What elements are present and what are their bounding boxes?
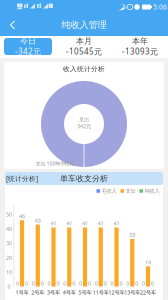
staticText: 0 bbox=[126, 280, 129, 287]
staticText: 支出 100% 342元 bbox=[35, 160, 74, 167]
staticText: 40 bbox=[6, 225, 12, 232]
staticText: 0 bbox=[151, 280, 154, 287]
staticText: 41 bbox=[82, 220, 88, 227]
staticText: 0 bbox=[41, 280, 44, 287]
staticText: 41 bbox=[113, 220, 119, 227]
staticText: 41 bbox=[66, 220, 72, 227]
staticText: 收入统计分析 bbox=[63, 65, 105, 73]
staticText: 2号车 bbox=[31, 289, 44, 296]
staticText: 纯收入管理 bbox=[61, 19, 106, 31]
staticText: 30 bbox=[6, 240, 12, 247]
staticText: 本月 bbox=[76, 36, 92, 46]
staticText: -10545元 bbox=[66, 46, 102, 57]
button[interactable]: Back bbox=[3, 15, 22, 34]
staticText: 0 bbox=[79, 280, 82, 287]
staticText: 43 bbox=[35, 217, 41, 224]
staticText: 5号车 bbox=[78, 289, 91, 296]
staticText: 今日 bbox=[20, 36, 36, 46]
staticText: 纯收入 bbox=[144, 188, 159, 194]
staticText: 0 bbox=[142, 280, 145, 287]
staticText: 12号车 bbox=[108, 289, 124, 296]
staticText: 0 bbox=[32, 280, 35, 287]
staticText: 支出 bbox=[125, 188, 135, 194]
staticText: 支出 bbox=[79, 116, 89, 123]
staticText: 单车收支分析 bbox=[60, 174, 108, 183]
button[interactable]: 今日 bbox=[4, 38, 52, 55]
staticText: 毛收入 bbox=[101, 188, 116, 194]
staticText: 0 bbox=[56, 280, 59, 287]
button[interactable]: 本年 bbox=[116, 38, 164, 55]
staticText: 20 bbox=[6, 254, 12, 261]
staticText: 本年 bbox=[132, 36, 148, 46]
staticText: 13号车 bbox=[124, 289, 140, 296]
staticText: 1号车 bbox=[15, 289, 28, 296]
staticText: 0 bbox=[72, 280, 75, 287]
staticText: 0 bbox=[63, 280, 66, 287]
staticText: 41 bbox=[98, 220, 104, 227]
staticText: 33 bbox=[129, 231, 135, 238]
staticText: 4号车 bbox=[63, 289, 76, 296]
staticText: 0 bbox=[110, 280, 113, 287]
staticText: 50 bbox=[6, 211, 12, 218]
staticText: 0 bbox=[95, 280, 98, 287]
staticText: 0 bbox=[16, 280, 19, 287]
button[interactable]: 本月 bbox=[60, 38, 108, 55]
staticText: 10 bbox=[6, 269, 12, 276]
staticText: 46 bbox=[19, 213, 25, 220]
staticText: 14 bbox=[145, 259, 151, 266]
staticText: 0 bbox=[119, 280, 122, 287]
staticText: 0 bbox=[88, 280, 91, 287]
staticText: 5:06 bbox=[153, 3, 167, 11]
staticText: 342元 bbox=[77, 123, 91, 130]
staticText: 0 bbox=[7, 283, 10, 290]
staticText: 0 bbox=[47, 280, 50, 287]
staticText: -342元 bbox=[15, 46, 41, 57]
staticText: 22号车 bbox=[140, 289, 156, 296]
staticText: 0 bbox=[104, 280, 107, 287]
staticText: 3号车 bbox=[47, 289, 60, 296]
staticText: 11号车 bbox=[93, 289, 109, 296]
staticText: 41 bbox=[50, 220, 56, 227]
staticText: 0 bbox=[135, 280, 138, 287]
staticText: 0 bbox=[25, 280, 28, 287]
staticText: -13093元 bbox=[122, 46, 158, 57]
staticText: [统计分析] bbox=[6, 174, 38, 183]
